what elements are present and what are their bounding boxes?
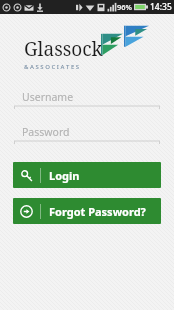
button[interactable]: Login key <box>13 162 161 188</box>
button[interactable]: Username <box>14 88 160 109</box>
staticText: 14:35 <box>150 1 172 13</box>
staticText: Login <box>49 168 80 183</box>
staticText: Username <box>22 90 74 104</box>
other: Forgot password <box>20 205 33 218</box>
staticText: Glassock <box>24 36 103 62</box>
button[interactable]: Password <box>14 123 160 144</box>
staticText: Password <box>22 125 70 139</box>
staticText: Forgot Password? <box>49 204 146 219</box>
staticText: 96% <box>117 2 132 12</box>
staticText: & A S S O C I A T E S <box>24 63 80 71</box>
other: Login key <box>20 169 33 182</box>
button[interactable]: Forgot password <box>13 198 161 224</box>
